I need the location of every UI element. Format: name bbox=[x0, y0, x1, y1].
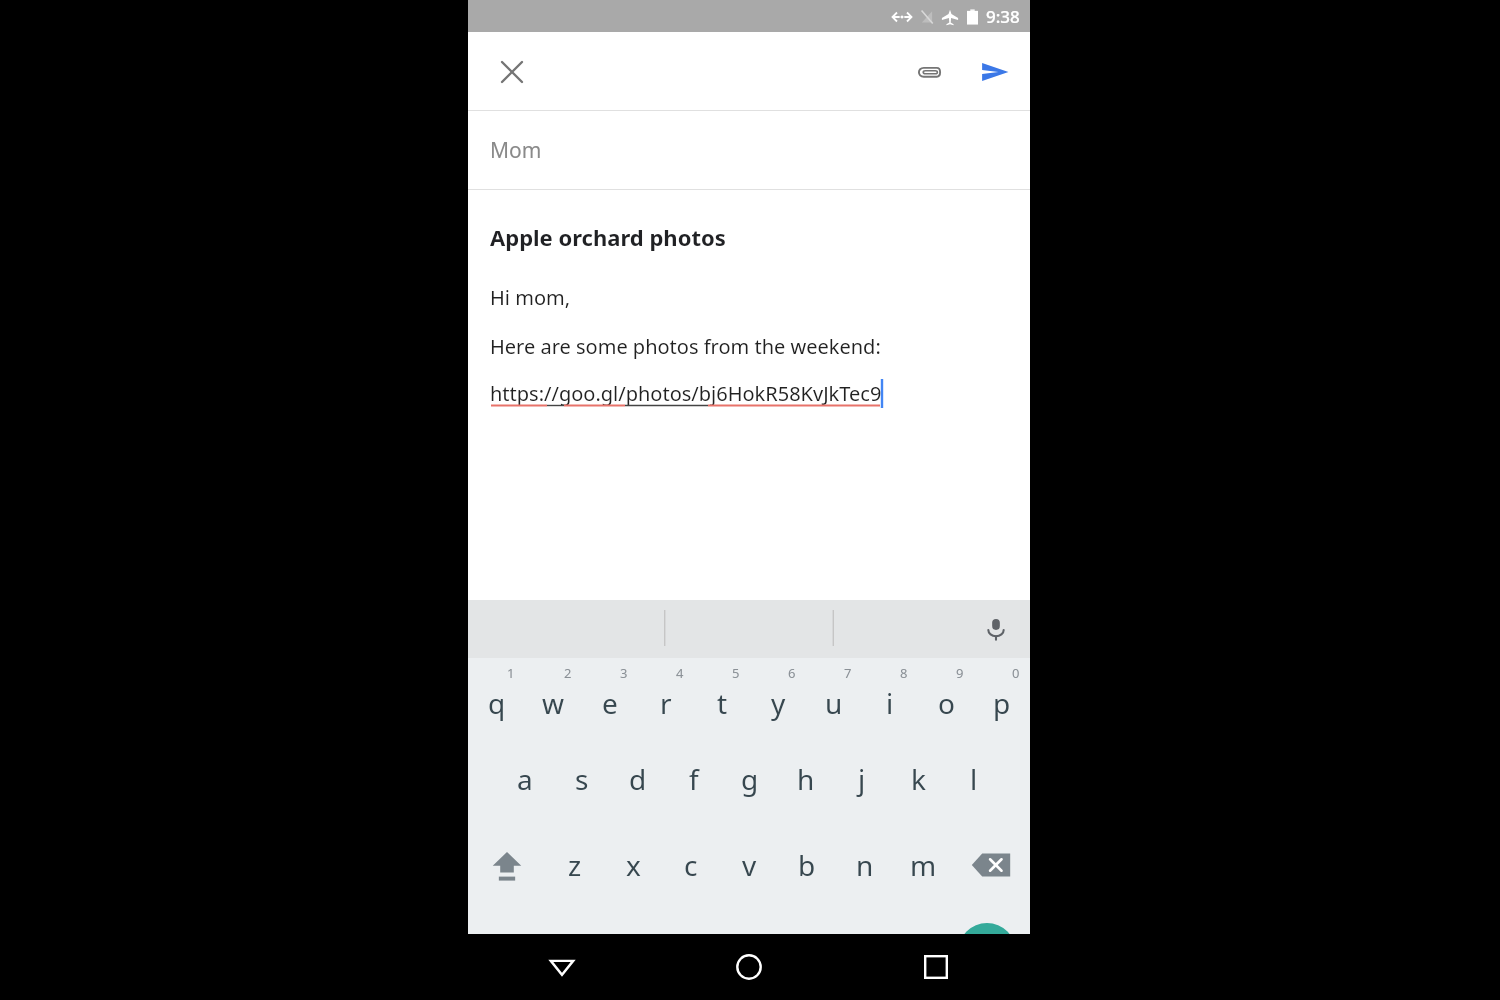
staticText: k bbox=[911, 760, 926, 798]
button[interactable]: d bbox=[610, 736, 666, 822]
button[interactable]: x bbox=[604, 822, 662, 908]
button[interactable]: 9 bbox=[918, 658, 974, 736]
staticText: c bbox=[684, 846, 698, 884]
staticText: v bbox=[742, 846, 757, 884]
staticText: w bbox=[542, 684, 565, 722]
staticText: 9 bbox=[956, 664, 964, 682]
staticText: 8 bbox=[900, 664, 908, 682]
button[interactable]: ?123 bbox=[468, 908, 546, 996]
staticText: n bbox=[856, 846, 874, 884]
staticText: j bbox=[858, 760, 866, 798]
button[interactable]: h bbox=[778, 736, 834, 822]
button[interactable]: Enter bbox=[958, 923, 1016, 981]
staticText: r bbox=[660, 684, 672, 722]
button[interactable]: Backspace bbox=[952, 822, 1030, 908]
staticText: i bbox=[886, 684, 894, 722]
button[interactable]: Shift bbox=[468, 822, 546, 908]
staticText: 4 bbox=[676, 664, 684, 682]
button[interactable]: . bbox=[874, 908, 944, 996]
button[interactable]: 5 bbox=[694, 658, 750, 736]
button[interactable]: Home bbox=[655, 934, 842, 1000]
staticText: e bbox=[602, 684, 618, 722]
button[interactable]: 7 bbox=[806, 658, 862, 736]
button[interactable]: m bbox=[894, 822, 952, 908]
staticText: 1 bbox=[507, 664, 515, 682]
staticText: d bbox=[629, 760, 647, 798]
button[interactable]: Mom bbox=[468, 111, 1030, 190]
staticText: . bbox=[906, 931, 913, 966]
staticText: f bbox=[689, 760, 699, 798]
staticText: 2 bbox=[564, 664, 572, 682]
staticText: l bbox=[970, 760, 978, 798]
staticText: g bbox=[741, 760, 759, 798]
button[interactable]: Voice input bbox=[976, 609, 1016, 649]
button[interactable]: Send bbox=[972, 49, 1018, 95]
button[interactable]: f bbox=[666, 736, 722, 822]
staticText: m bbox=[910, 846, 937, 884]
staticText: z bbox=[568, 846, 582, 884]
button[interactable]: j bbox=[834, 736, 890, 822]
staticText: 5 bbox=[732, 664, 740, 682]
button[interactable]: Space bbox=[608, 935, 874, 969]
button[interactable]: n bbox=[836, 822, 894, 908]
staticText: 0 bbox=[1012, 664, 1020, 682]
button[interactable]: b bbox=[778, 822, 836, 908]
button[interactable]: Close bbox=[490, 50, 534, 94]
staticText: , bbox=[574, 931, 581, 966]
staticText: Here are some photos from the weekend: bbox=[490, 333, 881, 360]
button[interactable]: 2 bbox=[525, 658, 582, 736]
staticText: s bbox=[575, 760, 589, 798]
staticText: Mom bbox=[490, 136, 542, 165]
button[interactable]: s bbox=[553, 736, 610, 822]
staticText: o bbox=[938, 684, 955, 722]
staticText: x bbox=[626, 846, 641, 884]
staticText: 6 bbox=[788, 664, 796, 682]
button[interactable]: , bbox=[546, 908, 608, 996]
button[interactable]: 1 bbox=[468, 658, 525, 736]
staticText: 3 bbox=[620, 664, 628, 682]
button[interactable]: 8 bbox=[862, 658, 918, 736]
button[interactable]: 3 bbox=[582, 658, 638, 736]
button[interactable]: l bbox=[946, 736, 1002, 822]
button[interactable]: 6 bbox=[750, 658, 806, 736]
button[interactable]: 4 bbox=[638, 658, 694, 736]
button[interactable]: c bbox=[662, 822, 720, 908]
staticText: u bbox=[825, 684, 843, 722]
button[interactable]: Recents bbox=[842, 934, 1029, 1000]
button[interactable]: Back bbox=[468, 934, 655, 1000]
staticText: https://goo.gl/photos/bj6HokR58KvJkTec9 bbox=[490, 380, 882, 407]
staticText: q bbox=[488, 684, 506, 722]
staticText: t bbox=[717, 684, 728, 722]
button[interactable]: z bbox=[546, 822, 604, 908]
button[interactable]: a bbox=[496, 736, 553, 822]
staticText: h bbox=[797, 760, 815, 798]
staticText: p bbox=[993, 684, 1011, 722]
staticText: 7 bbox=[844, 664, 852, 682]
staticText: Apple orchard photos bbox=[490, 222, 726, 252]
staticText: y bbox=[771, 684, 786, 722]
button[interactable]: 0 bbox=[974, 658, 1030, 736]
button[interactable]: k bbox=[890, 736, 946, 822]
button[interactable]: Attach file bbox=[906, 49, 952, 95]
staticText: Hi mom, bbox=[490, 284, 571, 311]
button[interactable]: v bbox=[720, 822, 778, 908]
staticText: 9:38 bbox=[986, 5, 1020, 28]
staticText: b bbox=[798, 846, 816, 884]
button[interactable]: g bbox=[722, 736, 778, 822]
staticText: a bbox=[517, 760, 533, 798]
